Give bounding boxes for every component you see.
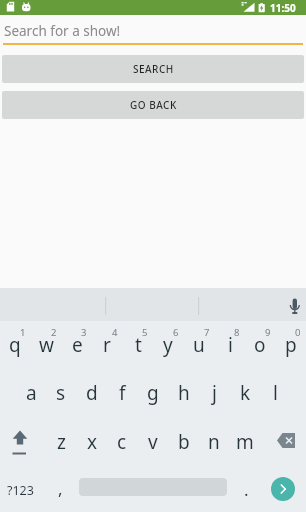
staticText: c xyxy=(117,429,127,455)
button[interactable]: ?123 xyxy=(0,470,40,510)
staticText: 4 xyxy=(112,326,118,338)
staticText: 8 xyxy=(234,326,240,338)
button[interactable]: q xyxy=(0,323,30,367)
button[interactable] xyxy=(271,477,295,501)
button[interactable]: t xyxy=(123,323,153,367)
staticText: x xyxy=(87,429,98,455)
staticText: y xyxy=(163,332,173,358)
staticText: k xyxy=(240,380,251,406)
staticText: e xyxy=(72,332,83,358)
button[interactable]: z xyxy=(46,420,76,464)
staticText: j xyxy=(212,380,217,406)
staticText: q xyxy=(9,332,21,358)
button[interactable]: j xyxy=(199,371,229,415)
staticText: 5 xyxy=(142,326,148,338)
button[interactable]: u xyxy=(184,323,214,367)
staticText: w xyxy=(39,332,54,358)
button[interactable]: o xyxy=(245,323,275,367)
button[interactable]: f xyxy=(107,371,137,415)
staticText: t xyxy=(135,332,142,358)
staticText: a xyxy=(26,380,37,406)
button[interactable]: p xyxy=(276,323,306,367)
button[interactable] xyxy=(282,289,306,319)
button[interactable]: d xyxy=(77,371,107,415)
staticText: , xyxy=(58,477,63,500)
button[interactable]: c xyxy=(107,420,137,464)
staticText: b xyxy=(178,429,190,455)
button[interactable]: Search for a show! xyxy=(3,20,303,44)
staticText: 1 xyxy=(20,326,26,338)
staticText: r xyxy=(103,332,111,358)
button[interactable]: m xyxy=(230,420,260,464)
staticText: 0 xyxy=(295,326,301,338)
button[interactable] xyxy=(260,414,306,460)
button[interactable]: w xyxy=(31,323,61,367)
button[interactable]: e xyxy=(62,323,92,367)
staticText: l xyxy=(273,380,278,406)
button[interactable]: v xyxy=(138,420,168,464)
button[interactable]: s xyxy=(46,371,76,415)
staticText: ?123 xyxy=(7,482,34,499)
button[interactable]: SEARCH xyxy=(2,55,304,83)
button[interactable]: i xyxy=(215,323,245,367)
button[interactable]: GO BACK xyxy=(2,91,304,119)
button[interactable]: g xyxy=(138,371,168,415)
staticText: d xyxy=(86,380,98,406)
staticText: 7 xyxy=(204,326,210,338)
staticText: GO BACK xyxy=(130,98,177,112)
staticText: h xyxy=(178,380,190,406)
staticText: v xyxy=(148,429,158,455)
staticText: Search for a show! xyxy=(4,22,121,40)
staticText: SEARCH xyxy=(133,62,174,76)
staticText: g xyxy=(147,380,159,406)
staticText: 2 xyxy=(51,326,57,338)
staticText: z xyxy=(57,429,66,455)
staticText: f xyxy=(119,380,126,406)
staticText: 3 xyxy=(81,326,87,338)
button[interactable]: h xyxy=(169,371,199,415)
staticText: 11:50 xyxy=(270,1,296,15)
button[interactable]: k xyxy=(230,371,260,415)
button[interactable]: b xyxy=(169,420,199,464)
staticText: s xyxy=(56,380,66,406)
button[interactable]: x xyxy=(77,420,107,464)
button[interactable]: , xyxy=(46,468,74,508)
staticText: . xyxy=(244,478,249,501)
button[interactable]: y xyxy=(153,323,183,367)
button[interactable]: r xyxy=(92,323,122,367)
staticText: 9 xyxy=(265,326,271,338)
staticText: p xyxy=(285,332,297,358)
staticText: m xyxy=(236,429,254,455)
staticText: n xyxy=(208,429,220,455)
button[interactable]: . xyxy=(232,469,260,509)
staticText: i xyxy=(228,332,233,358)
button[interactable]: l xyxy=(260,371,290,415)
staticText: u xyxy=(193,332,205,358)
staticText: 6 xyxy=(173,326,179,338)
button[interactable]: n xyxy=(199,420,229,464)
button[interactable] xyxy=(0,414,45,460)
staticText: o xyxy=(254,332,266,358)
button[interactable]: a xyxy=(16,371,46,415)
